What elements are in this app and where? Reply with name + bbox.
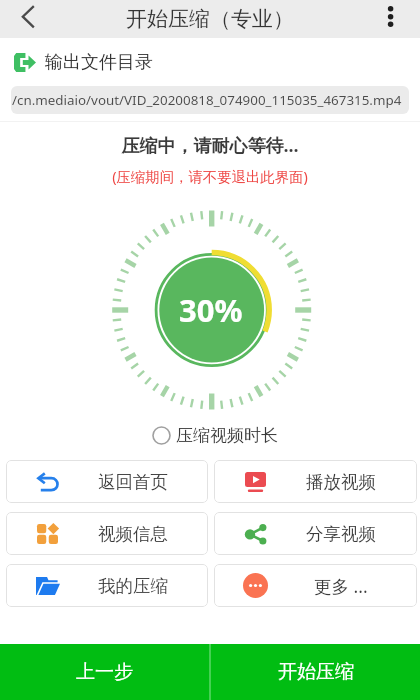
staticText: 压缩中，请耐心等待... bbox=[0, 133, 420, 158]
staticText: 分享视频 bbox=[306, 523, 376, 545]
button[interactable]: 返回首页 bbox=[6, 460, 208, 503]
staticText: 输出文件目录 bbox=[45, 51, 153, 74]
staticText: 更多 ... bbox=[314, 574, 368, 598]
staticText: 压缩视频时长 bbox=[176, 425, 278, 446]
button[interactable]: 播放视频 bbox=[214, 460, 417, 503]
button[interactable]: 上一步 bbox=[0, 644, 209, 700]
staticText: 上一步 bbox=[76, 660, 133, 684]
staticText: 我的压缩 bbox=[98, 575, 168, 597]
button[interactable]: 分享视频 bbox=[214, 512, 417, 555]
button[interactable]: 压缩视频时长 bbox=[148, 421, 282, 450]
staticText: /cn.mediaio/vout/VID_20200818_074900_115… bbox=[12, 91, 402, 109]
staticText: (压缩期间，请不要退出此界面) bbox=[0, 167, 420, 187]
button[interactable]: Back bbox=[0, 0, 52, 38]
button[interactable]: 开始压缩 bbox=[211, 644, 420, 700]
button[interactable]: More options bbox=[374, 0, 420, 38]
button[interactable]: 我的压缩 bbox=[6, 564, 208, 607]
staticText: 视频信息 bbox=[98, 523, 168, 545]
staticText: 30% bbox=[179, 289, 243, 331]
staticText: 播放视频 bbox=[306, 471, 376, 493]
button[interactable]: 视频信息 bbox=[6, 512, 208, 555]
button[interactable]: 更多 ... bbox=[214, 564, 417, 607]
staticText: 开始压缩（专业） bbox=[126, 6, 294, 32]
staticText: 开始压缩 bbox=[278, 660, 354, 684]
staticText: 返回首页 bbox=[98, 471, 168, 493]
